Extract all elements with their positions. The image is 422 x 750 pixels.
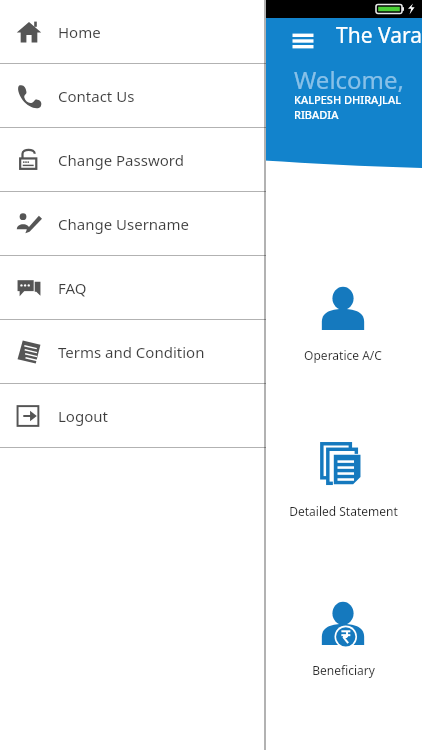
staticText: FAQ [58, 278, 87, 298]
staticText: Contact Us [58, 86, 135, 106]
button[interactable]: Open navigation menu [288, 26, 318, 56]
staticText: The Varac [336, 21, 422, 50]
button[interactable]: Detailed Statement [264, 437, 422, 519]
button[interactable]: Beneficiary [264, 596, 422, 678]
staticText: KALPESH DHIRAJLAL RIBADIA [294, 92, 422, 122]
staticText: Terms and Condition [58, 342, 205, 362]
button[interactable]: Change Username [0, 192, 266, 255]
button[interactable]: FAQ [0, 256, 266, 319]
staticText: Logout [58, 406, 108, 426]
staticText: Beneficiary [312, 662, 375, 678]
button[interactable]: Operative Account [264, 281, 422, 363]
button[interactable]: Home [0, 0, 266, 63]
staticText: Change Password [58, 150, 184, 170]
staticText: Operatice A/C [304, 347, 382, 363]
button[interactable]: Logout [0, 384, 266, 447]
button[interactable]: Contact Us [0, 64, 266, 127]
button[interactable]: Change Password [0, 128, 266, 191]
staticText: Welcome, [294, 63, 405, 96]
staticText: Home [58, 22, 101, 42]
staticText: Detailed Statement [289, 503, 398, 519]
button[interactable]: Terms and Condition [0, 320, 266, 383]
staticText: Change Username [58, 214, 189, 234]
